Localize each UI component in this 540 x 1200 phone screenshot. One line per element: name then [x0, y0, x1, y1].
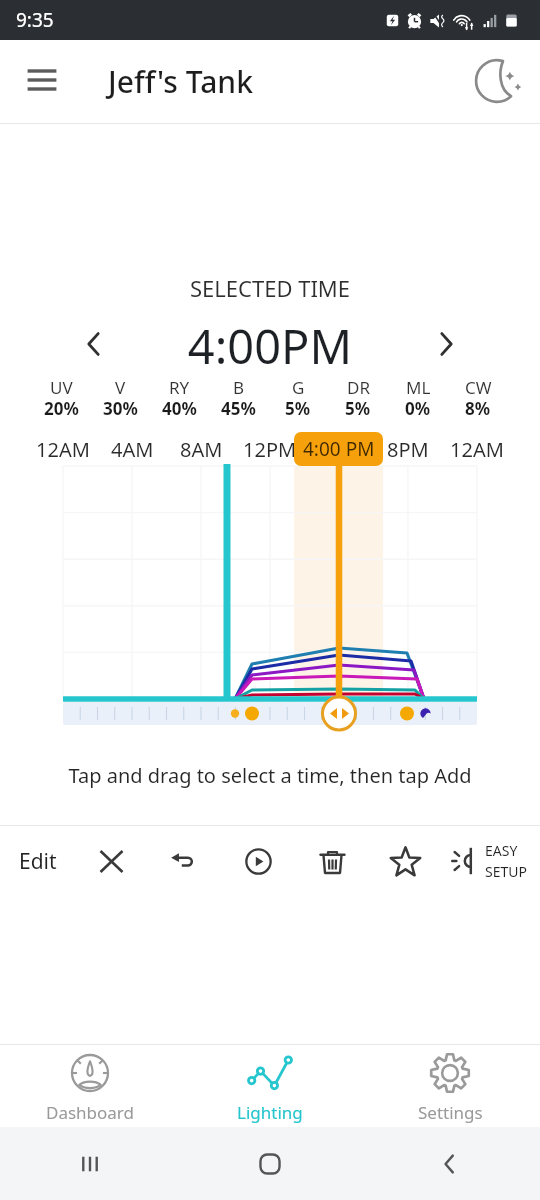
staticText: G: [292, 376, 305, 399]
button[interactable]: EASY: [451, 833, 527, 889]
button[interactable]: Open navigation menu: [14, 52, 70, 108]
staticText: 4:00 PM: [303, 436, 375, 462]
staticText: Settings: [418, 1101, 483, 1124]
button[interactable]: Settings: [360, 1045, 540, 1127]
staticText: V: [115, 376, 126, 399]
staticText: 5%: [345, 397, 371, 420]
button[interactable]: Night mode: [470, 49, 534, 113]
staticText: 9:35: [16, 7, 54, 33]
staticText: 45%: [221, 397, 256, 420]
staticText: 5%: [285, 397, 311, 420]
staticText: 4PM: [318, 436, 360, 463]
button[interactable]: Dashboard: [0, 1045, 180, 1127]
staticText: SETUP: [485, 862, 527, 881]
button[interactable]: Lighting: [180, 1045, 360, 1127]
staticText: Tap and drag to select a time, then tap …: [0, 762, 540, 789]
button[interactable]: Favorite: [377, 833, 433, 889]
staticText: RY: [169, 376, 190, 399]
staticText: 12AM: [36, 436, 90, 463]
staticText: 0%: [405, 397, 431, 420]
staticText: 40%: [162, 397, 197, 420]
staticText: 8%: [465, 397, 491, 420]
staticText: 4:00PM: [0, 314, 540, 378]
staticText: 12AM: [450, 436, 504, 463]
staticText: B: [233, 376, 245, 399]
button[interactable]: Edit: [8, 833, 68, 889]
button[interactable]: Next time: [423, 321, 469, 367]
staticText: SELECTED TIME: [0, 273, 540, 303]
staticText: 4AM: [111, 436, 154, 463]
staticText: 8PM: [387, 436, 429, 463]
staticText: Edit: [19, 847, 57, 876]
staticText: Jeff's Tank: [108, 61, 253, 102]
staticText: EASY: [485, 841, 518, 860]
staticText: 12PM: [243, 436, 297, 463]
button[interactable]: 4:00 PM: [294, 432, 383, 466]
staticText: ML: [406, 376, 431, 399]
staticText: 20%: [44, 397, 79, 420]
button[interactable]: Delete: [304, 833, 360, 889]
staticText: Lighting: [237, 1101, 303, 1124]
button[interactable]: Undo: [156, 833, 212, 889]
button[interactable]: Play: [230, 833, 286, 889]
button[interactable]: Close: [83, 833, 139, 889]
staticText: 30%: [103, 397, 138, 420]
staticText: UV: [50, 376, 73, 399]
staticText: DR: [347, 376, 370, 399]
staticText: CW: [465, 376, 492, 399]
staticText: Dashboard: [46, 1101, 135, 1124]
button[interactable]: Previous time: [71, 321, 117, 367]
staticText: 8AM: [180, 436, 223, 463]
